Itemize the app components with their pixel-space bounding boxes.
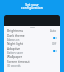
- staticText: Night light: [7, 42, 23, 46]
- button[interactable]: Screen timeout: [4, 60, 60, 67]
- staticText: Battery saver: [7, 51, 24, 54]
- button[interactable]: Wallpaper: [4, 54, 60, 60]
- staticText: Adaptive: [7, 47, 21, 51]
- button[interactable]: Dark theme: [4, 34, 60, 41]
- staticText: 30 seconds: [7, 64, 21, 67]
- staticText: configuration: [0, 5, 64, 10]
- staticText: Set your: [0, 2, 64, 7]
- button[interactable]: Night light: [4, 41, 60, 47]
- staticText: Off: [52, 42, 57, 46]
- button[interactable]: Toggle: [53, 50, 57, 52]
- button[interactable]: Toggle: [53, 37, 57, 39]
- button[interactable]: Adaptive: [4, 47, 60, 54]
- staticText: Wallpaper: [7, 55, 23, 59]
- staticText: Always on: [7, 38, 20, 41]
- staticText: Brightness: [7, 29, 24, 33]
- button[interactable]: Brightness: [4, 28, 60, 34]
- staticText: Screen timeout: [7, 60, 30, 64]
- staticText: Auto: [50, 29, 57, 33]
- staticText: Dark theme: [7, 34, 25, 38]
